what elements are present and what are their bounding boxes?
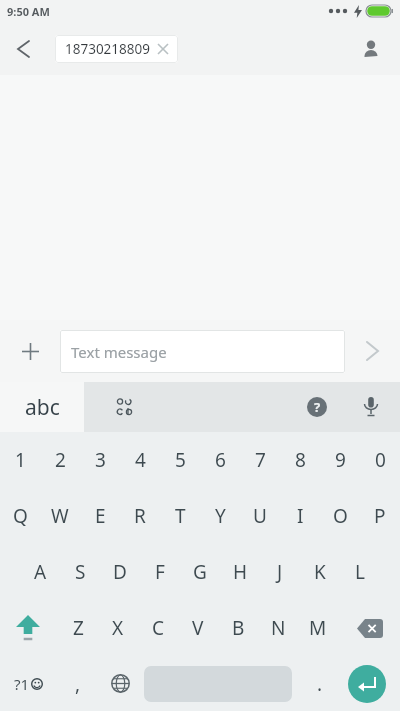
staticText: Text message: [71, 342, 167, 362]
button[interactable]: J: [260, 544, 300, 600]
button[interactable]: Z: [58, 600, 98, 656]
staticText: Y: [215, 503, 226, 529]
button[interactable]: [345, 320, 400, 382]
staticText: E: [95, 503, 106, 529]
staticText: C: [152, 615, 165, 641]
staticText: G: [193, 559, 207, 585]
button[interactable]: 2: [40, 432, 80, 488]
button[interactable]: Y: [200, 488, 240, 544]
staticText: abc: [25, 393, 60, 422]
button[interactable]: S: [60, 544, 100, 600]
staticText: Z: [73, 615, 84, 641]
staticText: 2: [55, 447, 66, 473]
staticText: ?: [314, 398, 321, 416]
button[interactable]: P: [360, 488, 400, 544]
staticText: I: [297, 503, 304, 529]
button[interactable]: H: [220, 544, 260, 600]
staticText: 3: [95, 447, 106, 473]
staticText: X: [112, 615, 124, 641]
staticText: 9:50 AM: [7, 4, 50, 19]
button[interactable]: C: [138, 600, 178, 656]
button[interactable]: X: [98, 600, 138, 656]
button[interactable]: 9: [320, 432, 360, 488]
button[interactable]: 6: [200, 432, 240, 488]
button[interactable]: [0, 320, 60, 382]
button[interactable]: ,: [56, 656, 100, 711]
button[interactable]: B: [218, 600, 258, 656]
staticText: 9: [335, 447, 346, 473]
staticText: B: [232, 615, 245, 641]
button[interactable]: M: [298, 600, 338, 656]
button[interactable]: L: [340, 544, 380, 600]
button[interactable]: [340, 600, 400, 656]
button[interactable]: Text message: [60, 330, 345, 373]
button[interactable]: .: [298, 656, 342, 711]
button[interactable]: V: [178, 600, 218, 656]
staticText: Q: [13, 503, 28, 529]
staticText: 1: [15, 447, 26, 473]
button[interactable]: 1: [0, 432, 40, 488]
button[interactable]: N: [258, 600, 298, 656]
button[interactable]: U: [240, 488, 280, 544]
staticText: L: [355, 559, 365, 585]
button[interactable]: [0, 600, 56, 656]
button[interactable]: W: [40, 488, 80, 544]
button[interactable]: 5: [160, 432, 200, 488]
staticText: .: [317, 671, 323, 697]
staticText: S: [75, 559, 86, 585]
button[interactable]: D: [100, 544, 140, 600]
button[interactable]: [84, 382, 166, 432]
button[interactable]: 18730218809: [55, 35, 178, 63]
staticText: U: [253, 503, 267, 529]
button[interactable]: abc: [0, 382, 84, 432]
button[interactable]: 3: [80, 432, 120, 488]
staticText: F: [155, 559, 165, 585]
staticText: M: [309, 615, 327, 641]
button[interactable]: [348, 665, 386, 703]
button[interactable]: [342, 382, 400, 432]
staticText: V: [192, 615, 204, 641]
button[interactable]: ?1: [0, 656, 56, 711]
button[interactable]: [356, 34, 386, 64]
button[interactable]: F: [140, 544, 180, 600]
staticText: 7: [255, 447, 266, 473]
staticText: O: [333, 503, 348, 529]
button[interactable]: T: [160, 488, 200, 544]
button[interactable]: 4: [120, 432, 160, 488]
staticText: ?1: [14, 674, 30, 694]
staticText: H: [233, 559, 248, 585]
staticText: 18730218809: [65, 40, 150, 58]
button[interactable]: [100, 656, 140, 711]
staticText: R: [134, 503, 146, 529]
staticText: 5: [175, 447, 186, 473]
staticText: P: [374, 503, 386, 529]
staticText: D: [113, 559, 127, 585]
button[interactable]: [8, 34, 38, 64]
staticText: W: [51, 503, 69, 529]
button[interactable]: O: [320, 488, 360, 544]
staticText: A: [34, 559, 47, 585]
button[interactable]: E: [80, 488, 120, 544]
button[interactable]: 8: [280, 432, 320, 488]
staticText: N: [271, 615, 286, 641]
staticText: 0: [375, 447, 386, 473]
staticText: J: [277, 559, 283, 585]
button[interactable]: A: [20, 544, 60, 600]
staticText: ,: [75, 671, 81, 697]
staticText: 8: [295, 447, 306, 473]
staticText: 6: [215, 447, 226, 473]
button[interactable]: 7: [240, 432, 280, 488]
button[interactable]: G: [180, 544, 220, 600]
button[interactable]: K: [300, 544, 340, 600]
staticText: T: [175, 503, 186, 529]
button[interactable]: R: [120, 488, 160, 544]
button[interactable]: ?: [292, 382, 342, 432]
button[interactable]: Q: [0, 488, 40, 544]
staticText: K: [314, 559, 326, 585]
button[interactable]: I: [280, 488, 320, 544]
button[interactable]: 0: [360, 432, 400, 488]
staticText: 4: [135, 447, 146, 473]
